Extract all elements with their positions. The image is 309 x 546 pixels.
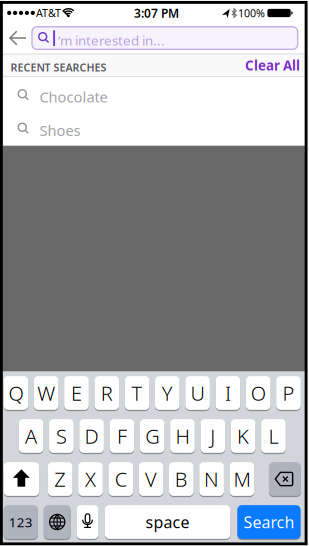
button[interactable]: S: [49, 419, 74, 453]
staticText: E: [71, 380, 82, 406]
staticText: B: [175, 466, 188, 492]
button[interactable]: J: [200, 419, 225, 453]
staticText: 100%: [238, 6, 265, 20]
button[interactable]: Next keyboard: [44, 505, 71, 539]
staticText: space: [146, 511, 190, 533]
staticText: F: [117, 423, 127, 449]
button[interactable]: Back: [7, 27, 29, 49]
button[interactable]: W: [34, 376, 58, 410]
button[interactable]: Y: [155, 376, 180, 410]
button[interactable]: I: [216, 376, 240, 410]
button[interactable]: X: [78, 462, 103, 496]
button[interactable]: H: [170, 419, 195, 453]
staticText: R: [101, 380, 113, 406]
button[interactable]: L: [261, 419, 286, 453]
button[interactable]: Search field: I'm interested in: [32, 27, 298, 49]
staticText: P: [282, 380, 294, 406]
button[interactable]: V: [139, 462, 163, 496]
button[interactable]: U: [185, 376, 210, 410]
staticText: K: [237, 423, 249, 449]
staticText: J: [210, 423, 215, 449]
button[interactable]: Search: [237, 505, 300, 539]
staticText: Shoes: [39, 120, 80, 140]
staticText: Search: [243, 511, 294, 533]
button[interactable]: G: [140, 419, 164, 453]
staticText: Clear All: [245, 56, 300, 74]
staticText: N: [204, 466, 219, 492]
button[interactable]: C: [108, 462, 133, 496]
staticText: ’m interested in...: [58, 31, 165, 49]
staticText: O: [251, 380, 266, 406]
staticText: D: [85, 423, 99, 449]
button[interactable]: Clear All: [245, 56, 300, 74]
button[interactable]: E: [64, 376, 89, 410]
button[interactable]: Shoes: [2, 111, 305, 145]
staticText: L: [268, 423, 278, 449]
button[interactable]: Q: [4, 376, 28, 410]
staticText: Y: [162, 380, 173, 406]
staticText: T: [132, 380, 143, 406]
button[interactable]: P: [276, 376, 301, 410]
button[interactable]: O: [246, 376, 270, 410]
staticText: S: [56, 423, 67, 449]
staticText: RECENT SEARCHES: [10, 60, 106, 74]
staticText: X: [85, 466, 96, 492]
staticText: Q: [8, 380, 23, 406]
staticText: M: [233, 466, 250, 492]
staticText: G: [145, 423, 159, 449]
staticText: U: [191, 380, 205, 406]
staticText: I: [225, 380, 231, 406]
staticText: 123: [9, 513, 33, 531]
staticText: Z: [54, 466, 66, 492]
button[interactable]: B: [169, 462, 194, 496]
button[interactable]: F: [110, 419, 134, 453]
button[interactable]: 123: [4, 505, 38, 539]
button[interactable]: Shift: [4, 462, 39, 496]
staticText: W: [37, 380, 55, 406]
button[interactable]: D: [79, 419, 104, 453]
staticText: 3:07 PM: [134, 5, 179, 21]
staticText: C: [115, 466, 127, 492]
staticText: V: [145, 466, 157, 492]
staticText: A: [25, 423, 37, 449]
button[interactable]: Chocolate: [2, 77, 305, 111]
button[interactable]: K: [231, 419, 255, 453]
staticText: Chocolate: [39, 87, 107, 106]
button[interactable]: M: [230, 462, 254, 496]
button[interactable]: Delete: [269, 462, 301, 496]
button[interactable]: T: [125, 376, 149, 410]
button[interactable]: Dictate: [77, 505, 98, 539]
button[interactable]: space: [105, 505, 230, 539]
button[interactable]: N: [199, 462, 224, 496]
button[interactable]: Z: [48, 462, 72, 496]
button[interactable]: R: [94, 376, 119, 410]
staticText: H: [175, 423, 189, 449]
staticText: AT&T: [36, 6, 61, 20]
button[interactable]: A: [19, 419, 43, 453]
